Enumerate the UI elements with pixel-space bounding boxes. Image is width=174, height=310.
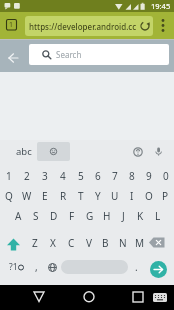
- staticText: S: [33, 209, 39, 223]
- staticText: 5: [78, 169, 84, 183]
- staticText: H: [103, 209, 111, 223]
- button[interactable]: H: [98, 208, 115, 224]
- button[interactable]: 1: [6, 19, 17, 30]
- button[interactable]: M: [131, 235, 148, 251]
- staticText: D: [50, 209, 58, 223]
- button[interactable]: [149, 142, 167, 161]
- button[interactable]: I: [123, 188, 140, 204]
- button[interactable]: X: [44, 235, 62, 251]
- button[interactable]: [37, 142, 70, 161]
- staticText: 6: [95, 169, 101, 183]
- staticText: V: [86, 236, 92, 250]
- button[interactable]: 0: [157, 168, 174, 184]
- button[interactable]: [156, 14, 170, 37]
- staticText: ,: [35, 260, 38, 274]
- staticText: L: [155, 209, 161, 223]
- button[interactable]: F: [63, 208, 81, 224]
- button[interactable]: D: [45, 208, 63, 224]
- staticText: 19:45: [151, 1, 171, 11]
- button[interactable]: .: [131, 258, 141, 276]
- button[interactable]: [44, 258, 60, 276]
- staticText: B: [102, 236, 109, 250]
- button[interactable]: U: [106, 188, 123, 204]
- button[interactable]: [3, 236, 24, 254]
- button[interactable]: https://developer.android.cc: [25, 16, 153, 36]
- button[interactable]: L: [149, 208, 166, 224]
- staticText: abc: [16, 145, 32, 158]
- staticText: 1: [6, 169, 12, 183]
- button[interactable]: ?1: [2, 258, 30, 276]
- button[interactable]: R: [54, 188, 72, 204]
- button[interactable]: ,: [30, 258, 42, 276]
- staticText: G: [86, 209, 94, 223]
- button[interactable]: J: [115, 208, 132, 224]
- button[interactable]: [29, 286, 49, 308]
- staticText: Search: [56, 49, 82, 60]
- button[interactable]: 3: [36, 168, 54, 184]
- staticText: 0: [163, 169, 169, 183]
- staticText: K: [137, 209, 144, 223]
- button[interactable]: T: [72, 188, 89, 204]
- staticText: 9: [146, 169, 152, 183]
- staticText: J: [122, 209, 125, 223]
- staticText: Q: [5, 189, 13, 203]
- staticText: T: [78, 189, 84, 203]
- staticText: 4: [60, 169, 66, 183]
- button[interactable]: abc: [7, 140, 41, 162]
- staticText: 7: [112, 169, 118, 183]
- staticText: I: [130, 189, 134, 203]
- button[interactable]: [129, 142, 147, 161]
- button[interactable]: 8: [123, 168, 140, 184]
- button[interactable]: 1: [0, 168, 18, 184]
- button[interactable]: G: [81, 208, 98, 224]
- staticText: 1: [9, 20, 14, 30]
- button[interactable]: N: [114, 235, 131, 251]
- button[interactable]: [61, 260, 128, 274]
- button[interactable]: 4: [54, 168, 72, 184]
- button[interactable]: [151, 288, 169, 306]
- button[interactable]: K: [132, 208, 149, 224]
- button[interactable]: 6: [89, 168, 106, 184]
- staticText: Y: [95, 189, 101, 203]
- button[interactable]: [150, 261, 167, 278]
- staticText: W: [22, 189, 32, 203]
- staticText: F: [69, 209, 75, 223]
- staticText: A: [15, 209, 22, 223]
- button[interactable]: [79, 286, 99, 308]
- staticText: O: [145, 189, 153, 203]
- button[interactable]: O: [140, 188, 157, 204]
- staticText: X: [50, 236, 56, 250]
- button[interactable]: B: [97, 235, 114, 251]
- button[interactable]: E: [36, 188, 54, 204]
- button[interactable]: [128, 286, 148, 308]
- button[interactable]: 7: [106, 168, 123, 184]
- staticText: 2: [24, 169, 30, 183]
- button[interactable]: S: [27, 208, 45, 224]
- staticText: ?1: [9, 261, 18, 273]
- button[interactable]: P: [157, 188, 174, 204]
- button[interactable]: W: [18, 188, 36, 204]
- staticText: E: [42, 189, 48, 203]
- button[interactable]: Z: [26, 235, 44, 251]
- button[interactable]: 9: [140, 168, 157, 184]
- button[interactable]: 5: [72, 168, 89, 184]
- button[interactable]: Q: [0, 188, 18, 204]
- staticText: https://developer.android.cc: [29, 21, 137, 32]
- button[interactable]: V: [80, 235, 97, 251]
- button[interactable]: C: [62, 235, 80, 251]
- button[interactable]: Search: [29, 44, 169, 65]
- staticText: U: [111, 189, 119, 203]
- button[interactable]: Y: [89, 188, 106, 204]
- staticText: 3: [42, 169, 48, 183]
- staticText: .: [135, 260, 138, 274]
- button[interactable]: 2: [18, 168, 36, 184]
- staticText: 8: [129, 169, 135, 183]
- staticText: Z: [32, 236, 38, 250]
- button[interactable]: A: [9, 208, 27, 224]
- button[interactable]: [4, 45, 24, 65]
- staticText: P: [162, 189, 169, 203]
- button[interactable]: [148, 236, 168, 250]
- staticText: R: [60, 189, 67, 203]
- staticText: C: [68, 236, 75, 250]
- staticText: M: [135, 236, 145, 250]
